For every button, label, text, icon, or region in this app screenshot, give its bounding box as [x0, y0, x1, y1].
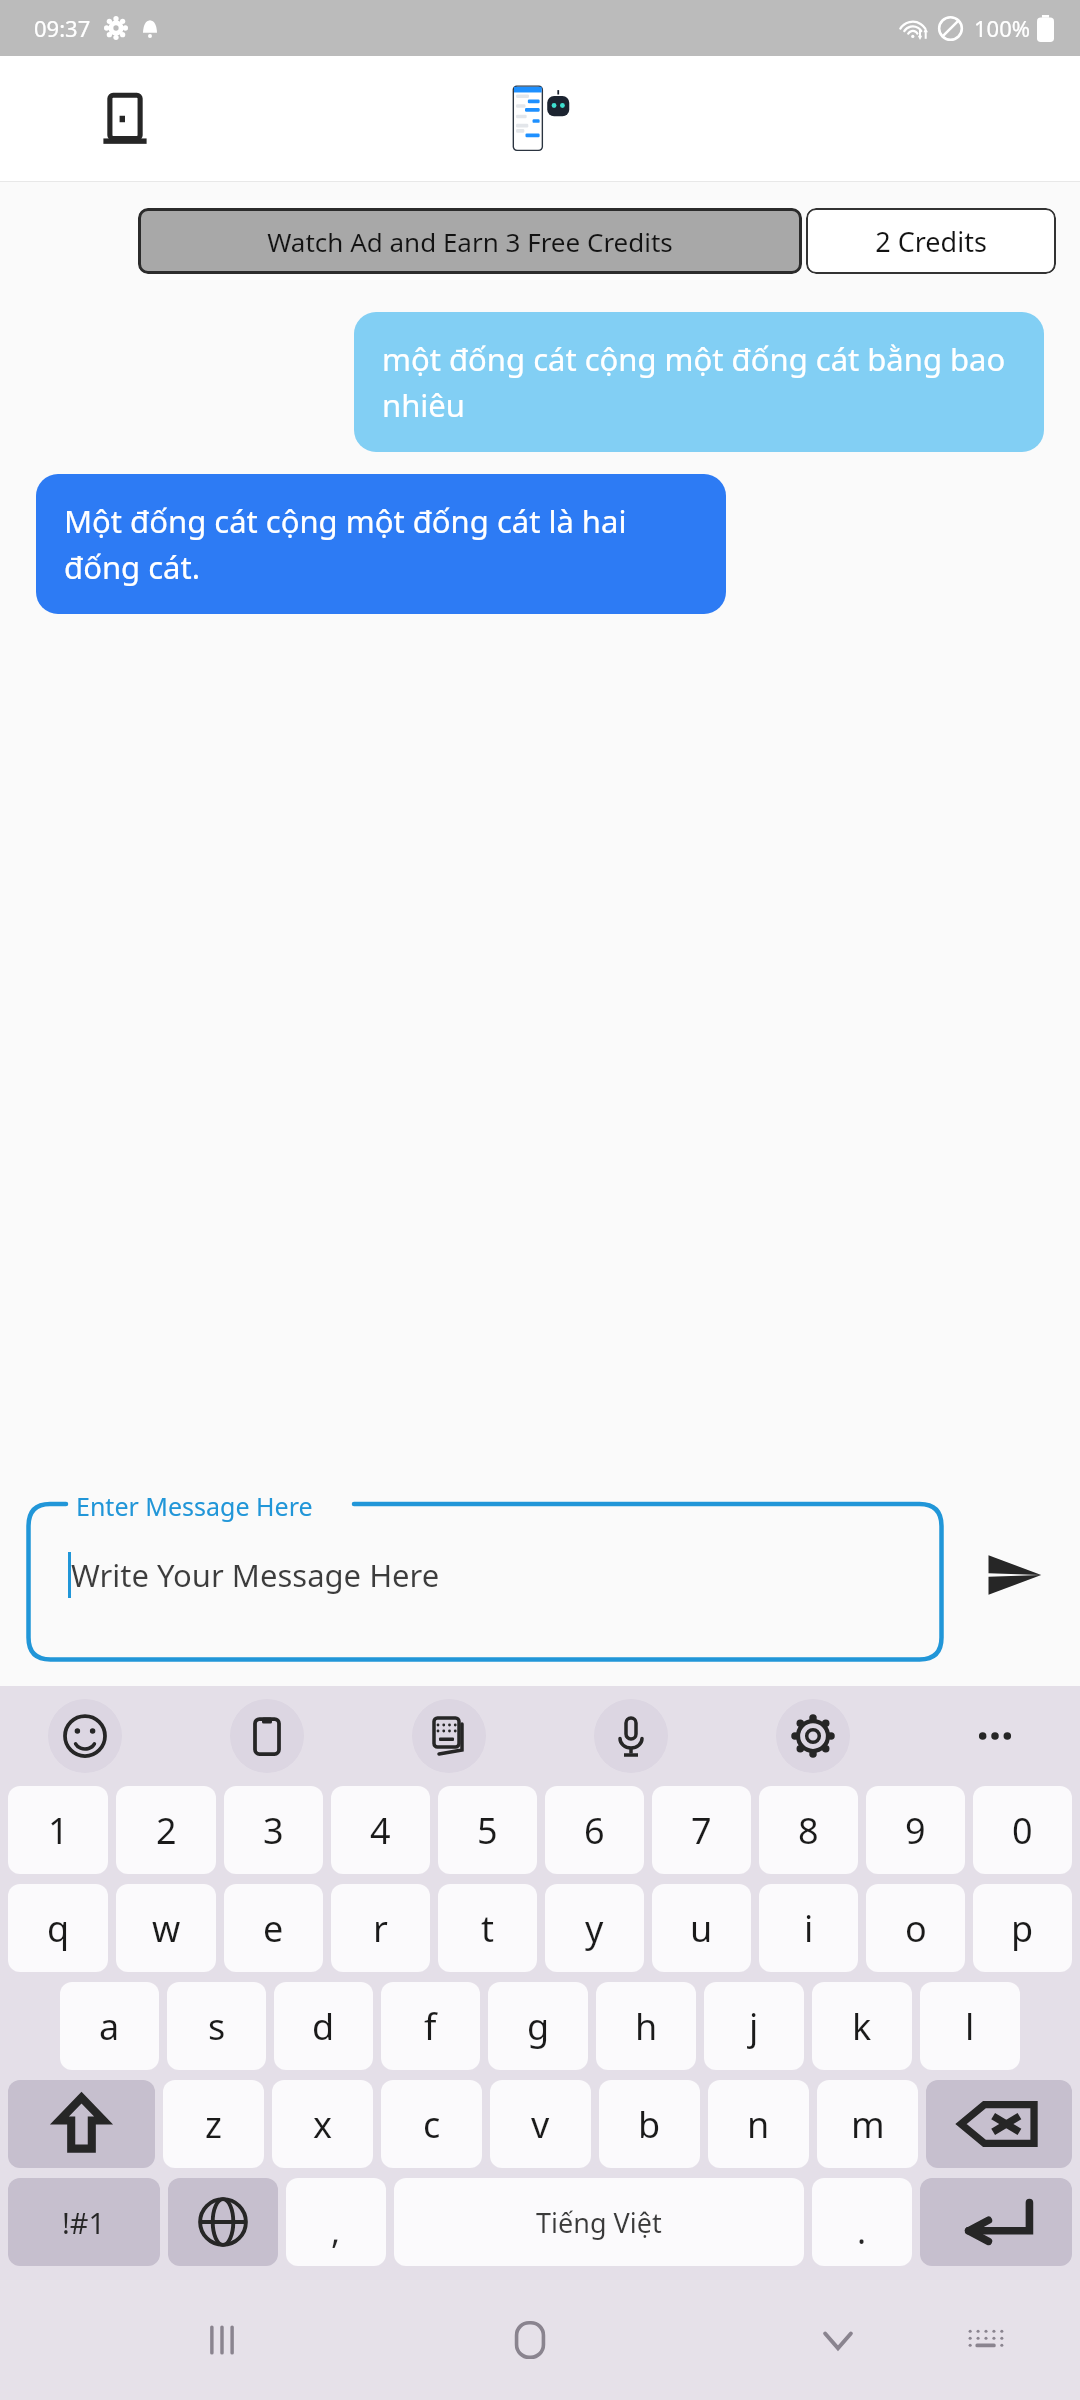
button[interactable]: r [331, 1884, 430, 1972]
button[interactable]: Enter [920, 2178, 1072, 2266]
staticText: m [851, 2100, 885, 2149]
button[interactable]: y [545, 1884, 644, 1972]
button[interactable]: Keyboard [940, 2294, 1032, 2386]
button[interactable]: 2 [116, 1786, 216, 1874]
staticText: r [373, 1904, 388, 1953]
button[interactable]: 4 [331, 1786, 430, 1874]
button[interactable]: , [286, 2178, 386, 2266]
button[interactable]: e [224, 1884, 323, 1972]
button[interactable]: Hide keyboard [792, 2294, 884, 2386]
staticText: 3 [263, 1806, 284, 1855]
button[interactable]: g [488, 1982, 588, 2070]
staticText: d [312, 2002, 335, 2051]
button[interactable]: c [381, 2080, 482, 2168]
button[interactable]: Recents [176, 2294, 268, 2386]
button[interactable]: 2 Credits [806, 208, 1056, 274]
staticText: Write Your Message Here [71, 1554, 440, 1596]
staticText: f [424, 2002, 437, 2051]
staticText: y [585, 1904, 604, 1953]
staticText: x [313, 2100, 333, 2149]
staticText: 5 [477, 1806, 498, 1855]
staticText: n [747, 2100, 770, 2149]
button[interactable]: z [163, 2080, 264, 2168]
button[interactable]: d [274, 1982, 373, 2070]
button[interactable]: t [438, 1884, 537, 1972]
staticText: 0 [1012, 1806, 1033, 1855]
staticText: q [47, 1904, 70, 1953]
staticText: l [965, 2002, 975, 2051]
staticText: 2 [156, 1806, 177, 1855]
button[interactable]: m [817, 2080, 918, 2168]
button[interactable]: Voice input [594, 1699, 668, 1773]
button[interactable]: . [812, 2178, 912, 2266]
staticText: 1 [48, 1806, 69, 1855]
button[interactable]: v [490, 2080, 591, 2168]
button[interactable]: Home [484, 2294, 576, 2386]
staticText: !#1 [62, 2203, 106, 2242]
button[interactable]: Chat bot [500, 79, 580, 159]
button[interactable]: n [708, 2080, 809, 2168]
button[interactable]: Watch Ad and Earn 3 Free Credits [138, 208, 802, 274]
button[interactable]: p [973, 1884, 1072, 1972]
staticText: Watch Ad and Earn 3 Free Credits [267, 224, 673, 259]
button[interactable]: Clipboard [230, 1699, 304, 1773]
staticText: w [152, 1904, 181, 1953]
staticText: i [804, 1904, 814, 1953]
staticText: o [905, 1904, 927, 1953]
button[interactable]: j [704, 1982, 804, 2070]
button[interactable]: 5 [438, 1786, 537, 1874]
staticText: 100% [974, 13, 1031, 43]
button[interactable]: 6 [545, 1786, 644, 1874]
button[interactable]: s [167, 1982, 266, 2070]
button[interactable]: w [116, 1884, 216, 1972]
button[interactable]: q [8, 1884, 108, 1972]
staticText: Enter Message Here [76, 1489, 313, 1523]
button[interactable]: Exit [92, 86, 158, 152]
button[interactable]: o [866, 1884, 965, 1972]
button[interactable]: b [599, 2080, 700, 2168]
button[interactable]: 7 [652, 1786, 751, 1874]
button[interactable]: x [272, 2080, 373, 2168]
staticText: 6 [584, 1806, 605, 1855]
button[interactable]: 8 [759, 1786, 858, 1874]
staticText: k [852, 2002, 872, 2051]
button[interactable]: l [920, 1982, 1020, 2070]
button[interactable]: i [759, 1884, 858, 1972]
staticText: h [635, 2002, 658, 2051]
button[interactable]: a [60, 1982, 159, 2070]
button[interactable]: Tiếng Việt [394, 2178, 804, 2266]
staticText: 9 [905, 1806, 926, 1855]
staticText: 2 Credits [875, 223, 987, 260]
button[interactable]: f [381, 1982, 480, 2070]
staticText: 4 [370, 1806, 391, 1855]
button[interactable]: k [812, 1982, 912, 2070]
staticText: g [527, 2002, 550, 2051]
button[interactable]: 9 [866, 1786, 965, 1874]
button[interactable]: 1 [8, 1786, 108, 1874]
staticText: một đống cát cộng một đống cát bằng bao … [382, 338, 1016, 426]
staticText: Một đống cát cộng một đống cát là hai đố… [64, 500, 698, 588]
button[interactable]: một đống cát cộng một đống cát bằng bao … [354, 312, 1044, 452]
staticText: c [423, 2100, 441, 2149]
button[interactable]: h [596, 1982, 696, 2070]
button[interactable]: 3 [224, 1786, 323, 1874]
button[interactable]: Keyboard settings [776, 1699, 850, 1773]
button[interactable]: u [652, 1884, 751, 1972]
button[interactable]: Keyboard layout [412, 1699, 486, 1773]
button[interactable]: Change language [168, 2178, 278, 2266]
button[interactable]: Một đống cát cộng một đống cát là hai đố… [36, 474, 726, 614]
staticText: z [205, 2100, 222, 2149]
staticText: . [857, 2208, 867, 2254]
staticText: Tiếng Việt [536, 2204, 662, 2241]
button[interactable]: Send [972, 1533, 1056, 1617]
button[interactable]: 0 [973, 1786, 1072, 1874]
button[interactable]: More options [958, 1699, 1032, 1773]
staticText: a [99, 2002, 120, 2051]
button[interactable]: Shift [8, 2080, 155, 2168]
button[interactable]: !#1 [8, 2178, 160, 2266]
staticText: , [331, 2208, 341, 2254]
button[interactable]: Backspace [926, 2080, 1072, 2168]
staticText: b [638, 2100, 661, 2149]
staticText: v [531, 2100, 550, 2149]
button[interactable]: Emoji [48, 1699, 122, 1773]
